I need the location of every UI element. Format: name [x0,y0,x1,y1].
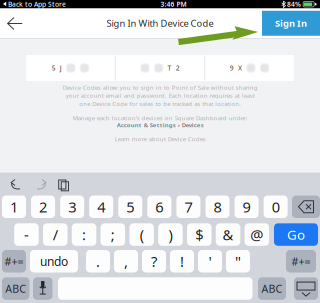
staticText: ABC [5,281,26,296]
staticText: #+= [291,254,310,268]
staticText: 9 [243,197,251,216]
staticText: ! [180,251,184,271]
staticText: 2 [176,64,180,72]
staticText: $ [195,225,203,244]
button[interactable]: ! [170,250,194,272]
button[interactable]: & [216,223,240,246]
staticText: 9 [230,64,234,72]
button[interactable]: . [86,250,110,272]
button[interactable]: ) [158,223,183,246]
staticText: ' [208,251,211,271]
button[interactable]: space [58,277,252,300]
staticText: @ [250,225,263,244]
staticText: ) [168,225,172,244]
staticText: . [96,251,100,271]
staticText: 1 [10,197,18,216]
button[interactable]: Go [274,223,318,246]
staticText: Back to App Store [8,0,66,9]
staticText: " [235,251,241,271]
staticText: 7 [184,197,192,216]
button[interactable]: 0 [264,195,288,218]
button[interactable]: undo [30,250,78,272]
staticText: T [168,64,172,72]
button[interactable]: ; [101,223,125,246]
staticText: J [60,64,62,72]
button[interactable]: ' [198,250,222,272]
staticText: 5 [52,64,56,72]
button[interactable]: ( [129,223,154,246]
staticText: Sign In [275,17,307,29]
button[interactable]: 9 [235,195,259,218]
button[interactable]: 7 [176,195,200,218]
staticText: Sign In With Device Code [106,17,213,29]
staticText: 0 [272,197,280,216]
button[interactable]: ? [142,250,166,272]
button[interactable]: Redo [34,178,47,191]
button[interactable]: 8 [205,195,229,218]
button[interactable]: $ [187,223,211,246]
button[interactable]: Back [0,8,30,38]
staticText: X [238,64,242,72]
staticText: 2 [39,197,47,216]
button[interactable]: Hide keyboard [294,277,318,300]
button[interactable]: : [72,223,96,246]
staticText: 3 [68,197,76,216]
button[interactable]: ABC [258,277,286,300]
button[interactable]: Learn more about Device Codes [80,135,240,143]
button[interactable]: Sign In [262,11,320,36]
staticText: Learn more about Device Codes [114,135,205,143]
staticText: & [222,225,233,244]
staticText: 6 [155,197,163,216]
button[interactable]: Dictation [33,277,52,300]
staticText: Manage each location's devices on Square… [72,114,247,122]
staticText: 84% [287,0,301,9]
staticText: , [124,251,128,271]
button[interactable]: 6 [147,195,171,218]
staticText: #+= [4,254,23,268]
staticText: 8 [213,197,221,216]
staticText: Device Codes allow you to sign in to Poi… [62,83,257,108]
button[interactable]: Undo [10,178,23,191]
button[interactable]: 5 [118,195,142,218]
button[interactable]: Delete [292,195,320,218]
button[interactable]: , [114,250,138,272]
button[interactable]: 1 [2,195,26,218]
staticText: - [24,225,29,244]
button[interactable]: ABC [2,277,29,300]
button[interactable]: 2 [31,195,55,218]
staticText: 5 [126,197,134,216]
staticText: : [82,225,86,244]
staticText: ; [111,225,115,244]
staticText: 4 [97,197,105,216]
button[interactable]: 4 [89,195,113,218]
staticText: 3:46 PM [161,0,187,9]
button[interactable]: - [14,223,39,246]
button[interactable]: / [43,223,67,246]
staticText: ( [140,225,144,244]
button[interactable]: " [226,250,250,272]
staticText: Account & Settings › Devices [116,121,203,129]
button[interactable]: Paste [58,178,70,191]
staticText: / [53,225,58,244]
staticText: Go [287,226,305,243]
button[interactable]: @ [245,223,269,246]
staticText: ? [151,251,157,271]
button[interactable]: #+= [286,250,316,272]
staticText: ABC [261,281,282,296]
staticText: undo [40,253,68,269]
button[interactable]: 3 [60,195,84,218]
button[interactable]: #+= [2,250,26,272]
